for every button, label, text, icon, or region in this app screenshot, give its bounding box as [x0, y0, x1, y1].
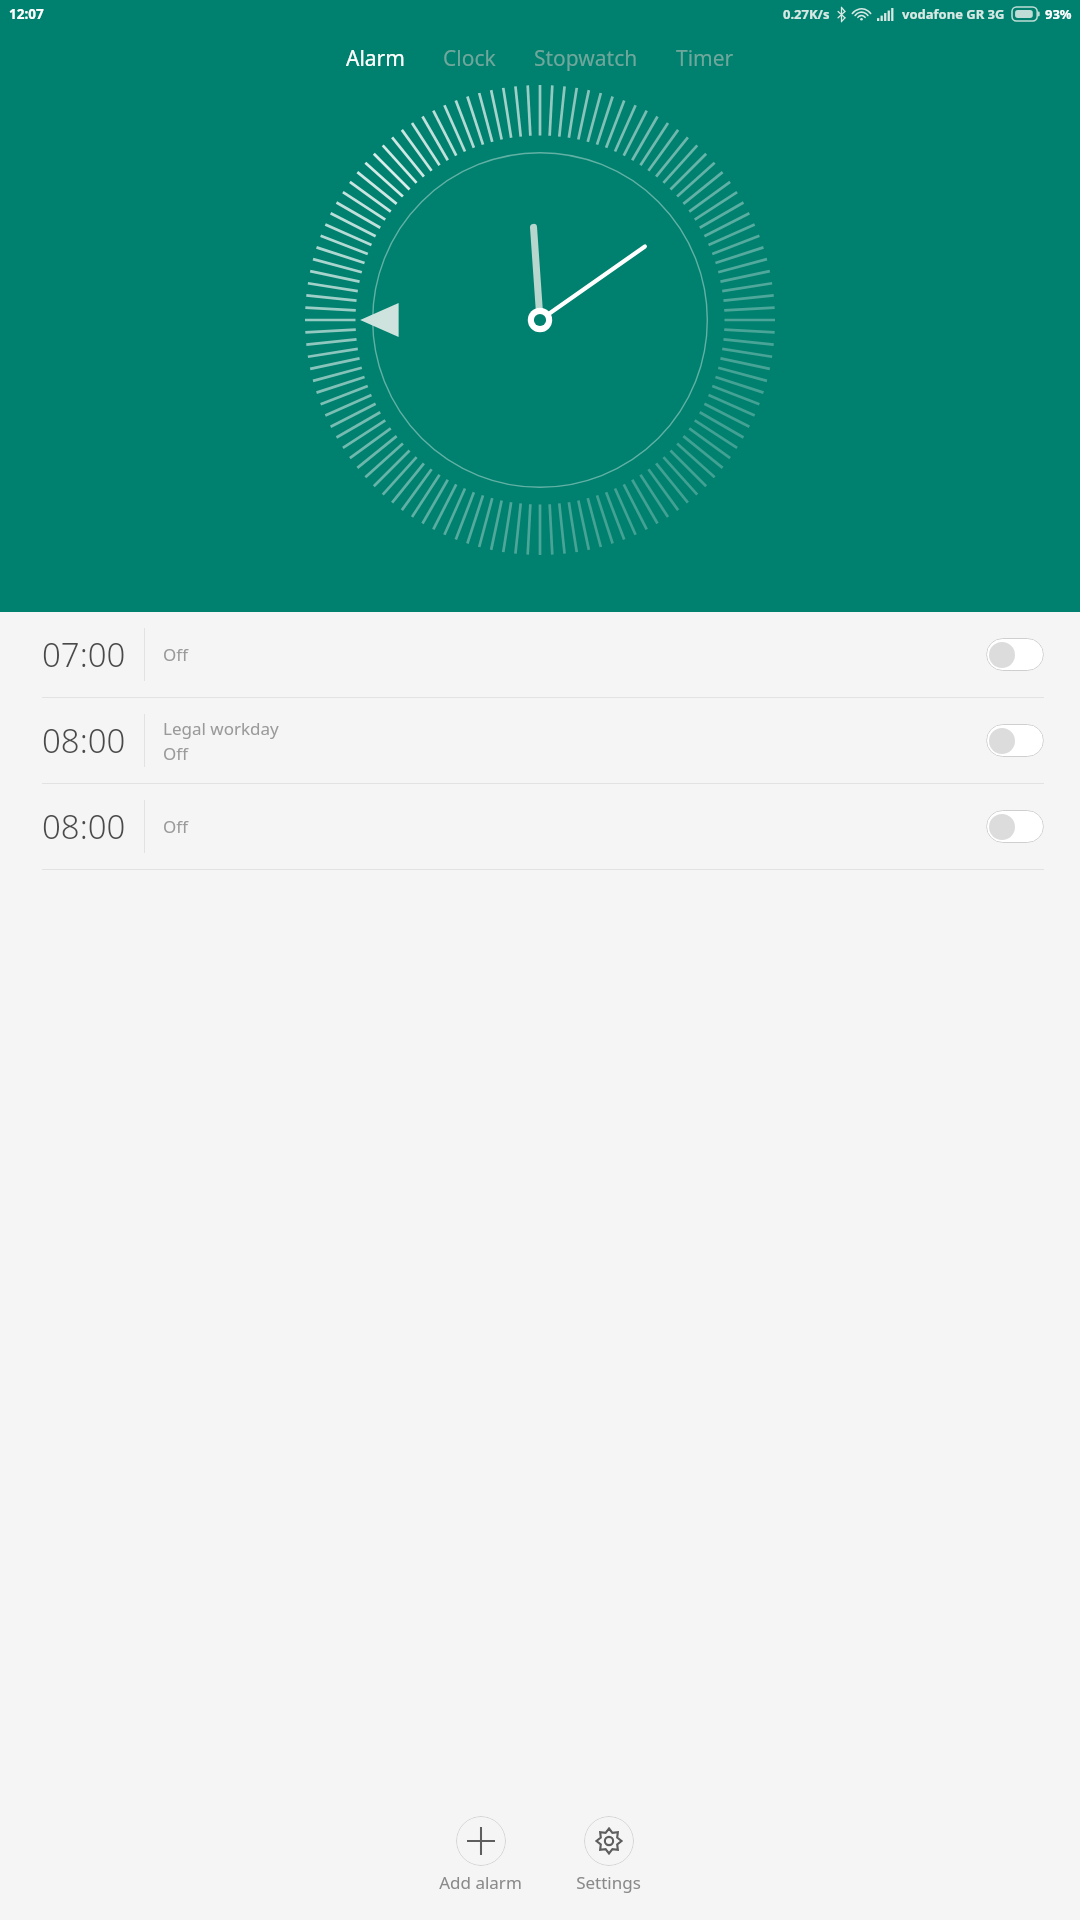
- button[interactable]: Clock: [437, 38, 502, 79]
- button[interactable]: Toggle alarm: [986, 724, 1044, 757]
- staticText: Off: [163, 815, 188, 838]
- staticText: Alarm: [346, 44, 405, 73]
- button[interactable]: Alarm: [340, 38, 411, 79]
- staticText: Legal workday: [163, 717, 279, 740]
- staticText: 93%: [1045, 5, 1072, 23]
- staticText: 0.27K/s: [783, 5, 830, 23]
- staticText: 07:00: [42, 632, 126, 677]
- button[interactable]: 08:00: [0, 784, 1080, 869]
- button[interactable]: Stopwatch: [528, 38, 644, 79]
- button[interactable]: Toggle alarm: [986, 638, 1044, 671]
- staticText: Stopwatch: [534, 44, 638, 73]
- staticText: 08:00: [42, 718, 126, 763]
- button[interactable]: Toggle alarm: [986, 810, 1044, 843]
- button[interactable]: 07:00: [0, 612, 1080, 697]
- button[interactable]: 08:00: [0, 698, 1080, 783]
- staticText: Add alarm: [439, 1871, 522, 1894]
- button[interactable]: Timer: [670, 38, 740, 79]
- staticText: 08:00: [42, 804, 126, 849]
- staticText: Off: [163, 742, 188, 765]
- staticText: 12:07: [9, 5, 44, 23]
- staticText: Timer: [676, 44, 734, 73]
- staticText: Settings: [576, 1871, 641, 1894]
- staticText: Off: [163, 643, 188, 666]
- button[interactable]: Add alarm: [429, 1812, 532, 1898]
- staticText: vodafone GR 3G: [902, 5, 1005, 23]
- button[interactable]: Settings: [566, 1812, 651, 1898]
- staticText: Clock: [443, 44, 496, 73]
